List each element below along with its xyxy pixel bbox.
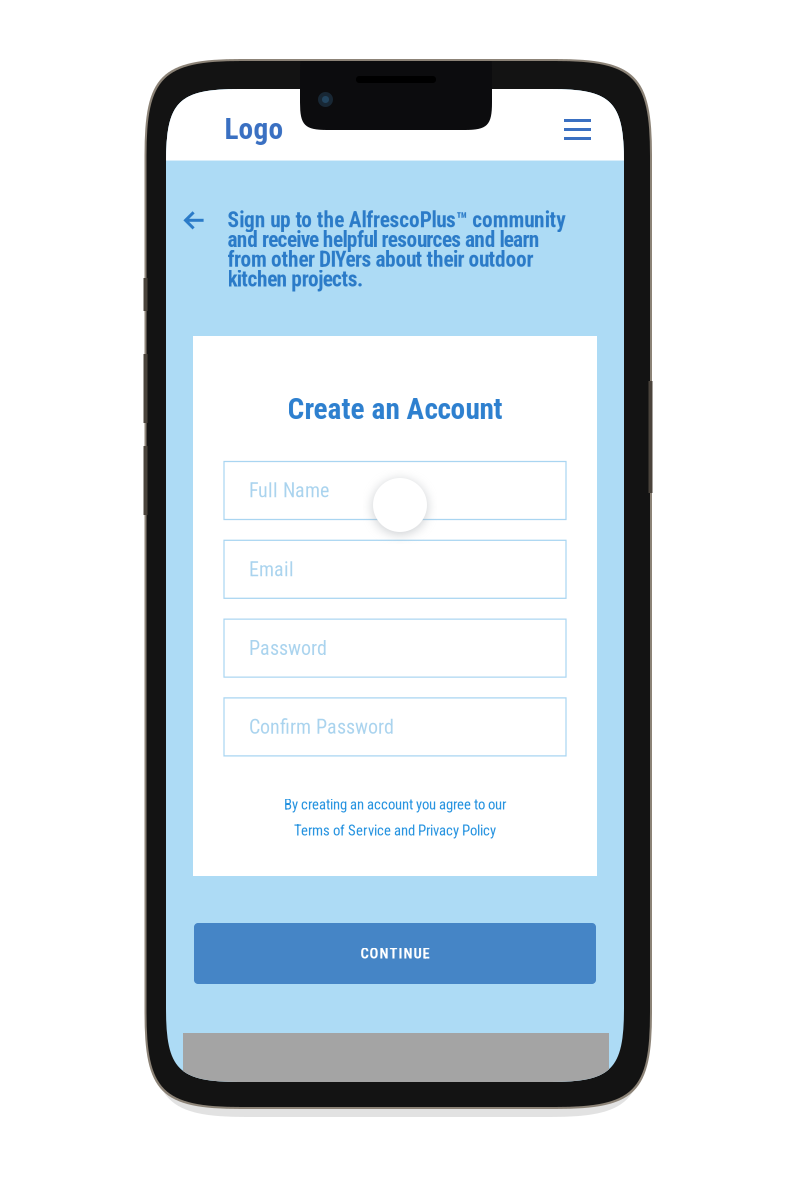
staticText: Logo bbox=[224, 112, 283, 146]
button[interactable]: CONTINUE bbox=[194, 923, 596, 984]
button[interactable]: Terms of Service and Privacy Policy bbox=[193, 823, 597, 838]
staticText: CONTINUE bbox=[360, 945, 429, 962]
staticText: and receive helpful resources and learn bbox=[227, 227, 540, 252]
staticText: Confirm Password bbox=[249, 715, 394, 739]
staticText: Create an Account bbox=[287, 392, 502, 426]
staticText: Terms of Service and Privacy Policy bbox=[294, 822, 496, 839]
button[interactable]: Full Name bbox=[224, 461, 566, 519]
button[interactable]: By creating an account you agree to our bbox=[193, 797, 597, 812]
button[interactable]: Confirm Password bbox=[224, 698, 566, 756]
button[interactable]: Menu bbox=[555, 107, 599, 151]
staticText: from other DIYers about their outdoor bbox=[227, 247, 533, 272]
staticText: Email bbox=[249, 558, 294, 581]
staticText: kitchen projects. bbox=[227, 267, 363, 292]
button[interactable]: Back bbox=[179, 205, 209, 235]
staticText: By creating an account you agree to our bbox=[284, 796, 506, 813]
button[interactable]: Email bbox=[224, 540, 566, 598]
staticText: Password bbox=[249, 636, 327, 660]
staticText: Full Name bbox=[249, 479, 329, 502]
button[interactable]: Password bbox=[224, 619, 566, 677]
staticText: Sign up to the AlfrescoPlus™ community bbox=[227, 207, 566, 232]
button[interactable]: Logo bbox=[224, 114, 304, 144]
